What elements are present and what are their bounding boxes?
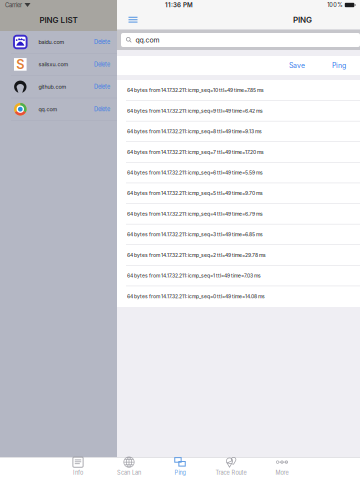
staticText: 64 bytes from 14.17.32.211: icmp_seq=6 t… xyxy=(127,170,263,176)
staticText: 100% xyxy=(327,2,342,8)
staticText: Ping xyxy=(332,61,346,70)
staticText: 64 bytes from 14.17.32.211: icmp_seq=4 t… xyxy=(127,211,263,217)
staticText: PING LIST xyxy=(39,15,77,25)
staticText: 11:36 PM xyxy=(165,1,193,9)
staticText: Save xyxy=(289,61,305,70)
button[interactable]: Trace Route xyxy=(205,457,256,480)
staticText: 64 bytes from 14.17.32.211: icmp_seq=10 … xyxy=(127,87,264,93)
staticText: 64 bytes from 14.17.32.211: icmp_seq=8 t… xyxy=(127,128,262,134)
staticText: 64 bytes from 14.17.32.211: icmp_seq=2 t… xyxy=(127,252,266,258)
staticText: qq.com xyxy=(39,106,58,112)
staticText: 64 bytes from 14.17.32.211: icmp_seq=3 t… xyxy=(127,231,263,237)
button[interactable]: Info xyxy=(52,457,103,480)
button[interactable]: More xyxy=(256,457,307,480)
staticText: Scan Lan xyxy=(117,469,141,476)
staticText: baidu.com xyxy=(39,39,65,45)
button[interactable]: Ping xyxy=(322,56,356,75)
staticText: S xyxy=(16,57,24,72)
staticText: PING xyxy=(293,15,312,25)
button[interactable]: baidu.com xyxy=(0,31,117,53)
staticText: 64 bytes from 14.17.32.211: icmp_seq=7 t… xyxy=(127,149,264,155)
staticText: github.com xyxy=(39,84,67,90)
button[interactable]: Ping xyxy=(154,457,205,480)
staticText: Delete xyxy=(94,106,110,113)
button[interactable]: qq.com xyxy=(0,98,117,120)
button[interactable]: Show ping list xyxy=(123,10,143,29)
staticText: Delete xyxy=(94,61,110,68)
button[interactable]: S xyxy=(0,53,117,75)
button[interactable]: github.com xyxy=(0,76,117,98)
staticText: Trace Route xyxy=(215,469,246,476)
staticText: Info xyxy=(73,469,83,476)
staticText: Ping xyxy=(174,469,185,476)
staticText: 64 bytes from 14.17.32.211: icmp_seq=5 t… xyxy=(127,190,263,196)
staticText: Delete xyxy=(94,39,110,45)
staticText: 64 bytes from 14.17.32.211: icmp_seq=1 t… xyxy=(127,273,261,279)
staticText: 64 bytes from 14.17.32.211: icmp_seq=0 t… xyxy=(127,293,265,299)
staticText: 64 bytes from 14.17.32.211: icmp_seq=9 t… xyxy=(127,108,263,114)
staticText: More xyxy=(275,469,288,476)
staticText: sailsxu.com xyxy=(39,61,69,68)
button[interactable]: Save xyxy=(280,56,314,75)
button[interactable]: Scan Lan xyxy=(103,457,154,480)
staticText: Delete xyxy=(94,83,110,90)
staticText: qq.com xyxy=(135,36,159,44)
staticText: Carrier xyxy=(5,1,22,9)
